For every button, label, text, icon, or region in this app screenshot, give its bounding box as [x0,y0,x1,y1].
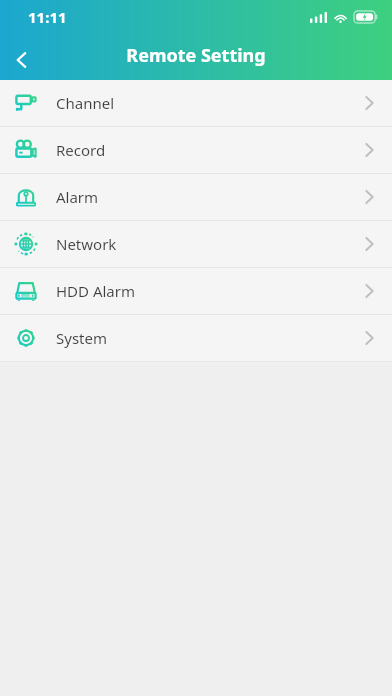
staticText: Channel [56,93,115,113]
button[interactable]: Alarm [0,174,392,220]
button[interactable]: HDD Alarm [0,268,392,314]
staticText: Remote Setting [0,43,392,68]
button[interactable]: Channel [0,80,392,126]
button[interactable]: Record [0,127,392,173]
button[interactable]: System [0,315,392,361]
staticText: HDD Alarm [56,281,136,301]
button[interactable]: Network [0,221,392,267]
staticText: Record [56,140,106,160]
staticText: System [56,328,107,348]
staticText: Alarm [56,187,99,207]
button[interactable]: Back [0,40,44,80]
staticText: Network [56,234,117,254]
staticText: 11:11 [28,7,67,27]
